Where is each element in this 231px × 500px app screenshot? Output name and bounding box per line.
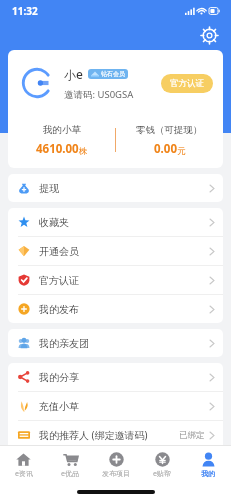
button[interactable]: 官方认证 [161,74,213,93]
button[interactable]: e贴帮 [139,446,185,484]
button[interactable]: 我的小草 [8,124,115,157]
staticText: 0.00 [154,141,177,157]
button[interactable]: 官方认证 [8,266,223,295]
staticText: 充值小草 [39,400,79,413]
button[interactable]: 充值小草 [8,392,223,421]
button[interactable]: 收藏夹 [8,208,223,237]
button[interactable]: 零钱（可提现） [116,124,223,157]
button[interactable]: 我的发布 [8,295,223,323]
button[interactable]: 我的 [185,446,231,484]
staticText: 官方认证 [170,78,204,89]
staticText: 官方认证 [39,274,79,287]
button[interactable]: 发布项目 [93,446,139,484]
button[interactable]: 我的分享 [8,363,223,392]
staticText: e资讯 [15,469,33,479]
button[interactable] [18,64,56,102]
staticText: 零钱（可提现） [136,124,203,136]
button[interactable]: 官方公告 [8,450,223,478]
staticText: 提现 [39,182,59,195]
button[interactable]: 我的推荐人 (绑定邀请码) [8,421,223,450]
staticText: 已绑定 [179,430,205,441]
staticText: 元 [177,146,186,157]
button[interactable]: 我的亲友团 [8,329,223,357]
button[interactable]: e资讯 [0,446,47,484]
button[interactable]: 提现 [8,174,223,202]
staticText: 开通会员 [39,245,79,258]
staticText: 我的 [201,469,215,478]
staticText: 官方公告 [39,458,79,471]
staticText: 收藏夹 [39,216,69,229]
staticText: 钻石会员 [101,70,125,78]
staticText: 我的推荐人 (绑定邀请码) [39,428,148,442]
staticText: 邀请码: US0GSA [64,88,134,101]
staticText: 我的发布 [39,303,79,316]
staticText: e贴帮 [153,469,171,479]
staticText: 我的亲友团 [39,337,89,350]
staticText: 发布项目 [102,469,130,478]
button[interactable]: 开通会员 [8,237,223,266]
staticText: 11:32 [12,4,38,18]
button[interactable]: e优品 [47,446,93,484]
staticText: 我的小草 [43,124,81,136]
staticText: 株 [79,146,88,157]
staticText: 我的分享 [39,371,79,384]
staticText: e优品 [61,469,79,479]
staticText: 小e [64,66,83,82]
staticText: 4610.00 [36,141,79,157]
button[interactable]: Settings [197,23,221,47]
